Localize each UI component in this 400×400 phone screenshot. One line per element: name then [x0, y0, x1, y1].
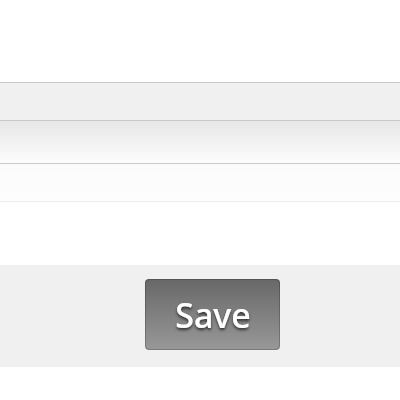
staticText: Save	[175, 292, 251, 338]
button[interactable]: Save	[145, 279, 280, 350]
